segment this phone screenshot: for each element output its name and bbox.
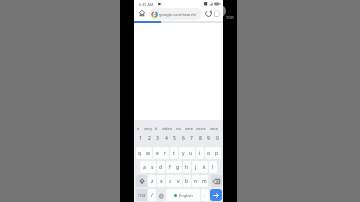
button[interactable]: g [174, 161, 182, 173]
button[interactable]: j [192, 161, 200, 173]
button[interactable]: vete [185, 126, 193, 131]
button[interactable]: a [140, 161, 148, 173]
button[interactable] [158, 193, 164, 199]
button[interactable]: y [179, 147, 187, 159]
staticText: . [204, 192, 206, 199]
button[interactable]: o [205, 147, 213, 159]
button[interactable] [138, 9, 146, 17]
staticText: e [156, 150, 159, 157]
staticText: x [160, 178, 163, 185]
staticText: g [176, 164, 180, 171]
staticText: l [212, 164, 214, 171]
staticText: h [185, 164, 189, 171]
button[interactable] [136, 175, 147, 187]
button[interactable]: e [153, 147, 161, 159]
button[interactable]: b [183, 175, 191, 187]
button[interactable]: very [144, 126, 152, 131]
button[interactable]: vete [210, 126, 218, 131]
staticText: 8 [199, 135, 202, 142]
staticText: n [194, 178, 198, 185]
staticText: / [151, 192, 153, 199]
button[interactable]: ?123 [136, 189, 147, 201]
button[interactable]: m [200, 175, 208, 187]
button[interactable]: k [200, 161, 208, 173]
button[interactable]: 2 [145, 135, 153, 142]
button[interactable]: r [161, 147, 169, 159]
button[interactable]: c [166, 175, 174, 187]
staticText: 6:45 AM [139, 2, 154, 7]
staticText: z [151, 178, 154, 185]
button[interactable] [211, 175, 222, 187]
button[interactable]: / [148, 189, 156, 201]
staticText: w [146, 150, 150, 157]
button[interactable]: f [166, 161, 174, 173]
button[interactable]: 8 [196, 135, 204, 142]
staticText: English [179, 193, 193, 198]
staticText: google.com/search/tqva [159, 12, 202, 17]
staticText: v [177, 178, 180, 185]
button[interactable]: . [201, 189, 209, 201]
button[interactable]: 3 [153, 135, 161, 142]
staticText: ?123 [138, 193, 146, 198]
staticText: y [182, 150, 185, 157]
staticText: 0 [216, 135, 219, 142]
staticText: 3 [156, 135, 159, 142]
staticText: 2 [148, 135, 151, 142]
button[interactable]: l [209, 161, 217, 173]
button[interactable]: 5 [170, 135, 178, 142]
button[interactable]: 9 [204, 135, 212, 142]
button[interactable]: i [196, 147, 204, 159]
staticText: TOR [226, 15, 234, 20]
staticText: m [202, 178, 207, 185]
staticText: q [138, 150, 142, 157]
staticText: 5 [173, 135, 176, 142]
button[interactable]: video [162, 126, 173, 131]
button[interactable]: e [137, 126, 140, 131]
staticText: 6 [182, 135, 185, 142]
button[interactable] [205, 10, 212, 17]
button[interactable]: vsi [176, 126, 181, 131]
button[interactable]: English [166, 189, 200, 201]
staticText: u [189, 150, 193, 157]
staticText: 1 [139, 135, 142, 142]
button[interactable]: p [213, 147, 221, 159]
button[interactable]: n [192, 175, 200, 187]
staticText: f [169, 164, 171, 171]
button[interactable]: 6 [179, 135, 187, 142]
staticText: 4 [165, 135, 168, 142]
staticText: k [203, 164, 206, 171]
button[interactable]: voice [196, 126, 206, 131]
staticText: o [207, 150, 211, 157]
button[interactable]: q [136, 147, 144, 159]
staticText: d [159, 164, 163, 171]
button[interactable]: w [144, 147, 152, 159]
button[interactable]: h [183, 161, 191, 173]
button[interactable]: v [174, 175, 182, 187]
staticText: j [195, 164, 197, 171]
button[interactable]: u [187, 147, 195, 159]
button[interactable]: d [157, 161, 165, 173]
button[interactable]: x [157, 175, 165, 187]
staticText: b [185, 178, 189, 185]
staticText: i [199, 150, 201, 157]
button[interactable]: z [148, 175, 156, 187]
staticText: r [164, 150, 167, 157]
button[interactable]: 4 [162, 135, 170, 142]
button[interactable]: google.com/search/tqva [149, 8, 202, 20]
button[interactable]: 7 [187, 135, 195, 142]
staticText: 7 [190, 135, 193, 142]
staticText: t [173, 150, 175, 157]
staticText: p [215, 150, 219, 157]
button[interactable] [214, 10, 223, 18]
staticText: 9 [207, 135, 210, 142]
staticText: a [143, 164, 146, 171]
staticText: s [151, 164, 154, 171]
staticText: c [169, 178, 172, 185]
button[interactable]: s [148, 161, 156, 173]
button[interactable]: b [155, 126, 158, 131]
button[interactable]: t [170, 147, 178, 159]
button[interactable] [210, 189, 222, 201]
button[interactable]: 0 [213, 135, 221, 142]
button[interactable]: 1 [136, 135, 144, 142]
